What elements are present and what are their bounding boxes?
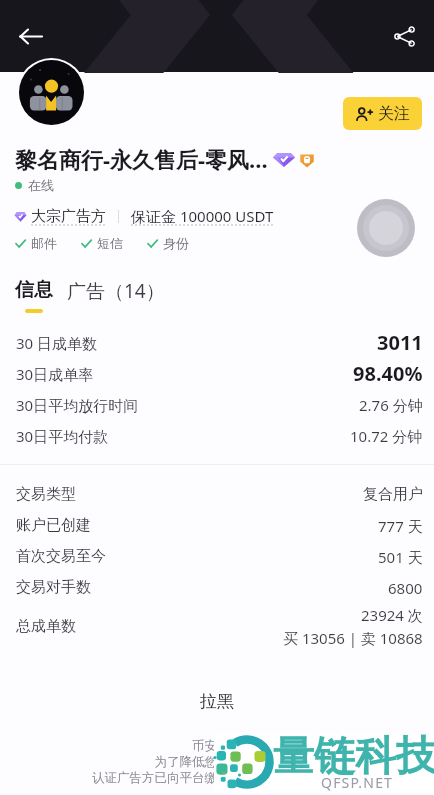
staticText: 币安认证 为了降低您的交易风险 认证广告方已向平台缴纳保证金，请放心交易 [0,738,434,786]
staticText: 量链科技 [273,731,434,783]
staticText: 交易对手数 [16,578,91,597]
staticText: 777 天 [378,516,423,536]
staticText: 黎名商行-永久售后-零风... [15,144,268,174]
staticText: 30 日成单数 [16,333,98,353]
button[interactable]: 关注 [343,97,422,130]
staticText: 总成单数 [16,617,76,636]
staticText: 交易类型 [16,485,76,504]
button[interactable]: 信息 [15,278,53,313]
staticText: 复合用户 [363,485,423,504]
staticText: 30日成单率 [16,364,94,384]
staticText: 6800 [388,578,423,598]
staticText: 买 13056 | 卖 10868 [283,628,423,648]
staticText: 30日平均放行时间 [16,395,139,415]
staticText: 在线 [28,177,54,193]
staticText: 关注 [378,104,410,124]
staticText: 信息 [15,278,53,302]
staticText: 首次交易至今 [16,547,106,566]
button[interactable]: 保证金 100000 USDT [131,206,274,226]
staticText: 拉黑 [200,691,234,712]
staticText: 30日平均付款 [16,426,109,446]
staticText: 23924 次 [361,605,423,625]
button[interactable]: 大宗广告方 [31,207,106,226]
staticText: QFSP.NET [321,773,394,792]
staticText: 3011 [377,329,423,356]
staticText: 身份 [163,235,189,251]
staticText: 501 天 [378,547,423,567]
staticText: 邮件 [31,235,57,251]
button[interactable]: 广告（14） [67,278,165,304]
button[interactable]: 拉黑 [0,686,434,716]
staticText: 98.40% [353,360,423,387]
staticText: 账户已创建 [16,516,91,535]
staticText: 10.72 分钟 [350,426,423,446]
staticText: 短信 [97,235,123,251]
button[interactable]: Back [6,12,54,60]
staticText: 广告（14） [67,278,165,304]
button[interactable]: Share [382,14,426,58]
staticText: 2.76 分钟 [359,395,423,415]
